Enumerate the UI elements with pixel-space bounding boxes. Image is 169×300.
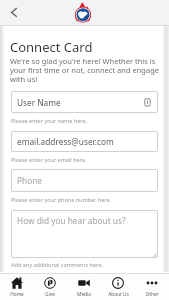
button[interactable]: Back	[4, 4, 22, 22]
staticText: How did you hear about us?	[17, 215, 126, 226]
button[interactable]: Media	[67, 274, 101, 300]
staticText: About Us	[108, 291, 129, 298]
staticText: Media	[77, 291, 91, 298]
staticText: Add any additional comments here.	[11, 261, 103, 268]
staticText: Please enter your email here.	[11, 156, 87, 163]
staticText: email.address@user.com	[17, 136, 114, 147]
button[interactable]: Other	[135, 274, 169, 300]
button[interactable]: How did you hear about us?	[11, 210, 158, 258]
button[interactable]: Give	[33, 274, 67, 300]
staticText: User Name	[17, 97, 61, 108]
button[interactable]: Home	[0, 274, 33, 300]
button[interactable]: User Name	[11, 91, 158, 113]
staticText: Please enter your name here.	[11, 117, 88, 124]
button[interactable]: About Us	[101, 274, 135, 300]
staticText: Connect Card	[10, 38, 93, 56]
button[interactable]: email.address@user.com	[11, 131, 158, 152]
staticText: Give	[45, 291, 55, 298]
staticText: Home	[10, 291, 24, 298]
staticText: We're so glad you're here! Whether this …	[10, 56, 160, 85]
button[interactable]: Phone	[11, 169, 158, 192]
staticText: Phone	[17, 175, 42, 186]
staticText: Other	[145, 291, 159, 298]
staticText: Please enter your phone number here.	[11, 196, 112, 203]
